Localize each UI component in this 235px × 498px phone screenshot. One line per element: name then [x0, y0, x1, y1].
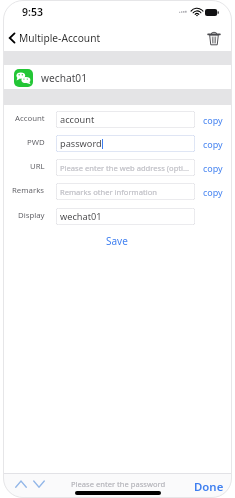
button[interactable]: copy — [202, 135, 224, 152]
staticText: Save — [106, 234, 128, 248]
button[interactable]: Delete — [208, 31, 220, 46]
button[interactable]: copy — [202, 183, 224, 200]
button[interactable]: Save — [98, 232, 136, 250]
staticText: wechat01 — [60, 210, 102, 223]
staticText: password — [60, 137, 102, 150]
staticText: 9:53 — [22, 5, 43, 19]
button[interactable]: Please enter the web address (opti... — [56, 159, 195, 176]
button[interactable]: password — [56, 135, 195, 152]
staticText: Display — [18, 210, 45, 221]
staticText: wechat01 — [41, 71, 87, 85]
button[interactable]: wechat01 — [56, 208, 195, 225]
staticText: Please enter the password — [71, 479, 166, 489]
button[interactable]: account — [56, 111, 195, 128]
button[interactable]: Multiple-Account — [3, 27, 107, 49]
staticText: PWD — [27, 137, 45, 148]
button[interactable]: Remarks other information — [56, 183, 195, 200]
staticText: URL — [30, 161, 45, 172]
button[interactable]: Next field — [33, 479, 45, 489]
staticText: copy — [203, 138, 223, 150]
staticText: Remarks other information — [60, 187, 157, 197]
staticText: Please enter the web address (opti... — [60, 163, 190, 173]
staticText: Multiple-Account — [19, 31, 101, 45]
button[interactable]: Previous field — [15, 479, 27, 489]
staticText: copy — [203, 162, 223, 174]
staticText: account — [60, 113, 95, 126]
staticText: Done — [194, 479, 224, 495]
staticText: copy — [203, 114, 223, 126]
button[interactable]: Done — [191, 477, 227, 497]
button[interactable]: copy — [202, 111, 224, 128]
staticText: Account — [15, 113, 45, 124]
button[interactable]: wechat01 — [3, 65, 232, 90]
button[interactable]: copy — [202, 159, 224, 176]
staticText: Remarks — [12, 185, 45, 196]
staticText: copy — [203, 186, 223, 198]
